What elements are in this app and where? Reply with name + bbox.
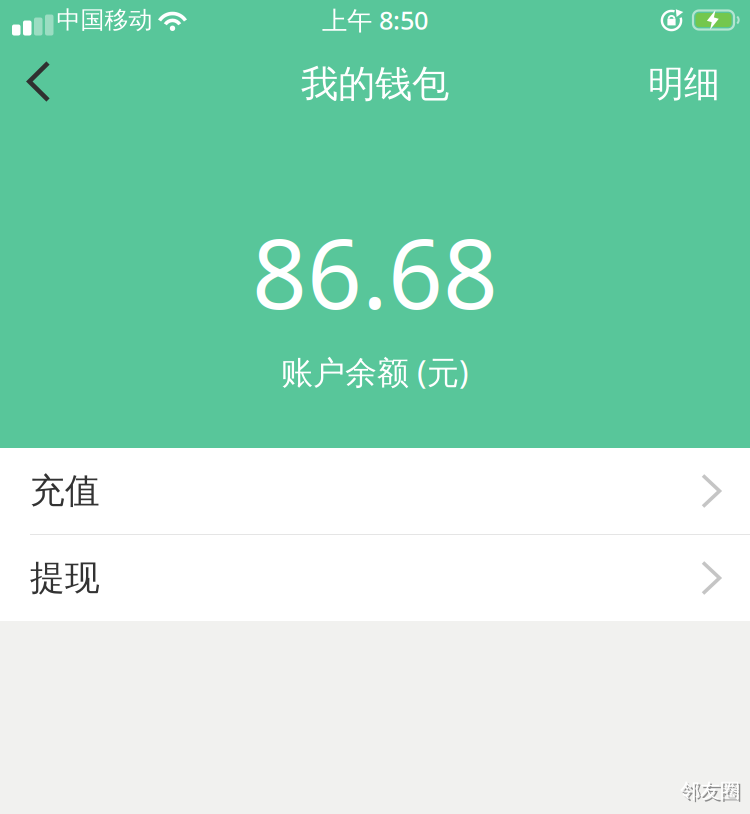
button[interactable]: 提现 — [0, 535, 750, 621]
staticText: 账户余额 (元) — [281, 350, 469, 393]
button[interactable]: 明细 — [628, 40, 750, 128]
staticText: 充值 — [30, 470, 100, 512]
staticText: 中国移动 — [56, 5, 152, 35]
staticText: 邻友圈 — [680, 778, 740, 803]
staticText: 提现 — [30, 557, 100, 599]
staticText: 86.68 — [252, 208, 498, 335]
staticText: 邻友圈 — [682, 780, 742, 805]
staticText: 明细 — [648, 62, 720, 106]
button[interactable]: 返回 — [0, 40, 64, 128]
staticText: 上午 8:50 — [322, 3, 428, 37]
staticText: 我的钱包 — [301, 61, 449, 107]
button[interactable]: 充值 — [0, 448, 750, 534]
